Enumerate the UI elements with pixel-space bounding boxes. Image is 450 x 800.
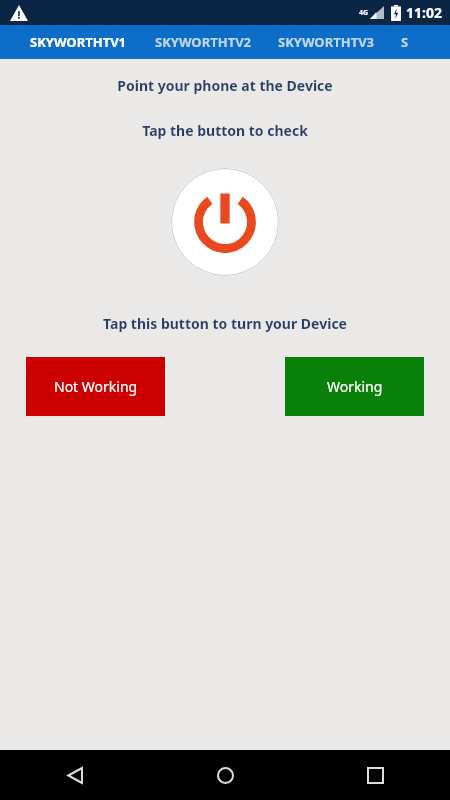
button[interactable]: SKYWORTHTV3 [278, 33, 375, 51]
staticText: Tap the button to check [142, 121, 308, 140]
button[interactable]: Not Working [26, 357, 165, 416]
button[interactable]: SKYWORTHTV2 [155, 33, 252, 51]
staticText: 4G [359, 8, 369, 18]
staticText: SKYWORTHTV2 [155, 33, 252, 51]
staticText: Not Working [54, 377, 138, 396]
button[interactable]: Recent apps [300, 750, 450, 800]
button[interactable]: Home [150, 750, 300, 800]
staticText: SKYWORTHTV1 [30, 33, 127, 51]
staticText: Tap this button to turn your Device [103, 314, 347, 333]
button[interactable]: SKYWORTHTV1 [30, 33, 127, 51]
button[interactable]: Back [0, 750, 150, 800]
button[interactable]: S [401, 33, 409, 51]
button[interactable]: Power [171, 168, 279, 276]
button[interactable]: Working [285, 357, 424, 416]
staticText: Working [327, 377, 383, 396]
staticText: SKYWORTHTV3 [278, 33, 375, 51]
staticText: S [401, 33, 409, 51]
staticText: Point your phone at the Device [117, 76, 333, 95]
staticText: 11:02 [406, 3, 442, 22]
